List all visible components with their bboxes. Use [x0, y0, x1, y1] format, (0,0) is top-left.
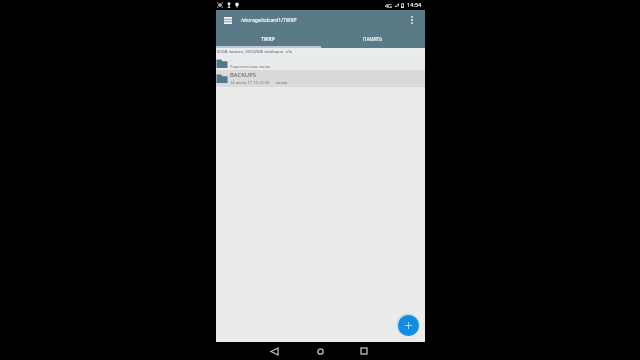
button[interactable]: Add [398, 315, 419, 336]
button[interactable]: BACKUPS [216, 70, 425, 87]
button[interactable]: TWRP [216, 30, 320, 48]
button[interactable]: Recent apps [354, 342, 374, 360]
staticText: ПАМЯТЬ [363, 36, 383, 42]
staticText: /storage/sdcard1/TWRP [241, 17, 297, 24]
button[interactable]: Home [310, 342, 330, 360]
staticText: Родительская папка [230, 64, 271, 70]
button[interactable]: More options [407, 10, 417, 30]
staticText: 14 июля 17 15:12:58 папка [230, 80, 288, 86]
staticText: .. [230, 57, 233, 63]
staticText: TWRP [261, 36, 275, 43]
staticText: 4G [385, 2, 393, 9]
staticText: BACKUPS [230, 71, 256, 79]
button[interactable]: Navigation menu [220, 10, 236, 30]
button[interactable]: .. [216, 56, 425, 70]
staticText: 14:54 [407, 1, 422, 9]
staticText: 60GB памяти, 26532МБ свободно, т/ж [217, 49, 292, 55]
button[interactable]: Back [264, 342, 284, 360]
button[interactable]: ПАМЯТЬ [320, 30, 425, 48]
